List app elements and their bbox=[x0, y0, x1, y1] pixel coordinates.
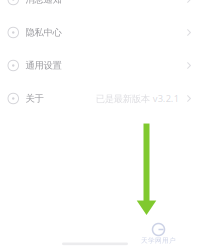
staticText: 关于 bbox=[25, 93, 43, 104]
button[interactable]: 通用设置 bbox=[0, 49, 200, 82]
staticText: 通用设置 bbox=[25, 60, 61, 71]
staticText: 消息通知 bbox=[25, 0, 61, 5]
button[interactable]: 隐私中心 bbox=[0, 16, 200, 49]
staticText: 隐私中心 bbox=[25, 27, 61, 38]
button[interactable]: 消息通知 bbox=[0, 0, 200, 16]
button[interactable]: 关于 bbox=[0, 82, 200, 115]
staticText: 已是最新版本 v3.2.1 bbox=[96, 92, 179, 105]
staticText: 天学网用户 bbox=[141, 236, 176, 245]
